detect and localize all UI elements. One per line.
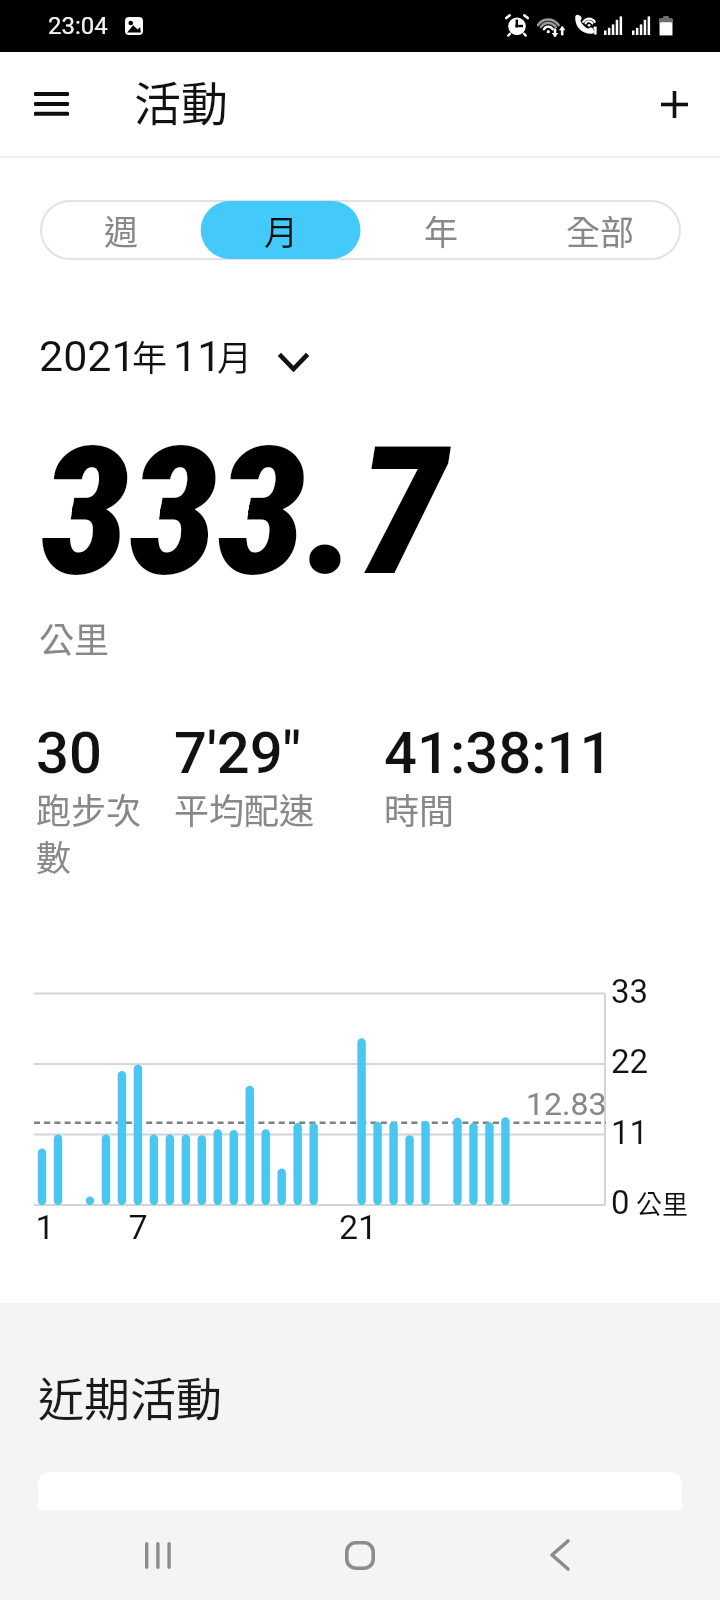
staticText: 0 xyxy=(611,1183,630,1222)
staticText: 年 xyxy=(424,206,458,255)
staticText: 公里 xyxy=(39,612,110,663)
staticText: 7 xyxy=(108,1207,168,1497)
staticText: 23:04 xyxy=(48,12,108,40)
staticText: 公里 xyxy=(636,1184,689,1222)
staticText: 11 xyxy=(173,331,222,381)
staticText: 平均配速 xyxy=(174,783,319,834)
staticText: 全部 xyxy=(566,206,634,255)
button[interactable]: 全部 xyxy=(520,201,680,259)
staticText: 333.7 xyxy=(41,408,447,617)
staticText: 41:38:11 xyxy=(384,719,613,787)
button[interactable]: Back xyxy=(521,1515,601,1595)
button[interactable]: Recent apps xyxy=(118,1515,198,1595)
staticText: 30 xyxy=(36,719,102,787)
staticText: 2021 xyxy=(39,331,136,381)
staticText: 22 xyxy=(611,1042,649,1081)
staticText: 活動 xyxy=(134,66,228,134)
button[interactable]: Add activity xyxy=(640,70,708,138)
staticText: 7'29" xyxy=(174,719,302,787)
staticText: 月 xyxy=(264,206,298,255)
button[interactable]: 年 xyxy=(361,201,521,259)
staticText: 週 xyxy=(104,206,138,255)
staticText: 時間 xyxy=(384,783,604,834)
staticText: 年 xyxy=(132,330,168,381)
staticText: 近期活動 xyxy=(38,1363,222,1430)
staticText: 33 xyxy=(611,972,649,1011)
button[interactable]: 月 xyxy=(201,201,361,259)
button[interactable]: 週 xyxy=(41,201,201,259)
staticText: 跑步次數 xyxy=(36,783,144,881)
button[interactable]: Open navigation menu xyxy=(18,70,86,138)
staticText: 1 xyxy=(15,1207,75,1497)
button[interactable]: 2021 xyxy=(34,326,324,386)
staticText: 21 xyxy=(328,1207,388,1497)
staticText: 11 xyxy=(611,1113,649,1152)
staticText: 月 xyxy=(217,330,253,381)
staticText: 12.83 xyxy=(526,1085,607,1123)
button[interactable]: Home xyxy=(320,1515,400,1595)
